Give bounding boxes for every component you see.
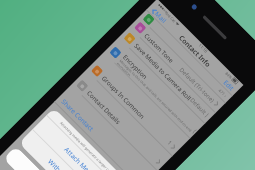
button[interactable]: 471 › — [139, 10, 232, 103]
staticText: Custom Tone — [143, 31, 176, 64]
button[interactable]: Contact Details — [72, 74, 168, 170]
staticText: Contact Details — [86, 89, 123, 125]
staticText: Attaching media will generate a larger c… — [59, 120, 122, 170]
button[interactable]: Groups In Common — [86, 60, 183, 156]
staticText: Default — [188, 96, 208, 116]
staticText: 3rd Cat — [164, 11, 177, 23]
button[interactable]: Attach Media — [33, 115, 127, 170]
staticText: Without Media — [46, 157, 85, 170]
staticText: Mail — [153, 9, 169, 25]
staticText: 1 — [166, 139, 174, 147]
staticText: Contact Info — [177, 33, 213, 69]
staticText: 11:18 — [197, 43, 209, 55]
staticText: Save Media to Camera Roll — [133, 41, 194, 102]
staticText: Messages to this chat and calls are secu… — [116, 58, 193, 135]
button[interactable]: Edit — [221, 77, 237, 94]
staticText: 471 › — [217, 88, 228, 99]
staticText: Attach Media — [62, 145, 98, 170]
button[interactable]: Save Media to Camera Roll — [119, 27, 215, 123]
staticText: Groups In Common — [101, 74, 147, 120]
staticText: 84% — [224, 71, 234, 80]
button[interactable]: Mail — [149, 5, 169, 26]
staticText: Encryption — [122, 52, 150, 81]
button[interactable]: Share Contact — [55, 91, 151, 170]
button[interactable]: Cancel — [3, 146, 96, 170]
staticText: Default (Tri-tone) — [178, 66, 217, 105]
button[interactable]: Custom Tone — [130, 17, 225, 113]
staticText: Share Contact — [60, 97, 96, 133]
button[interactable]: Without Media — [19, 130, 113, 170]
button[interactable]: Encryption — [104, 40, 202, 138]
